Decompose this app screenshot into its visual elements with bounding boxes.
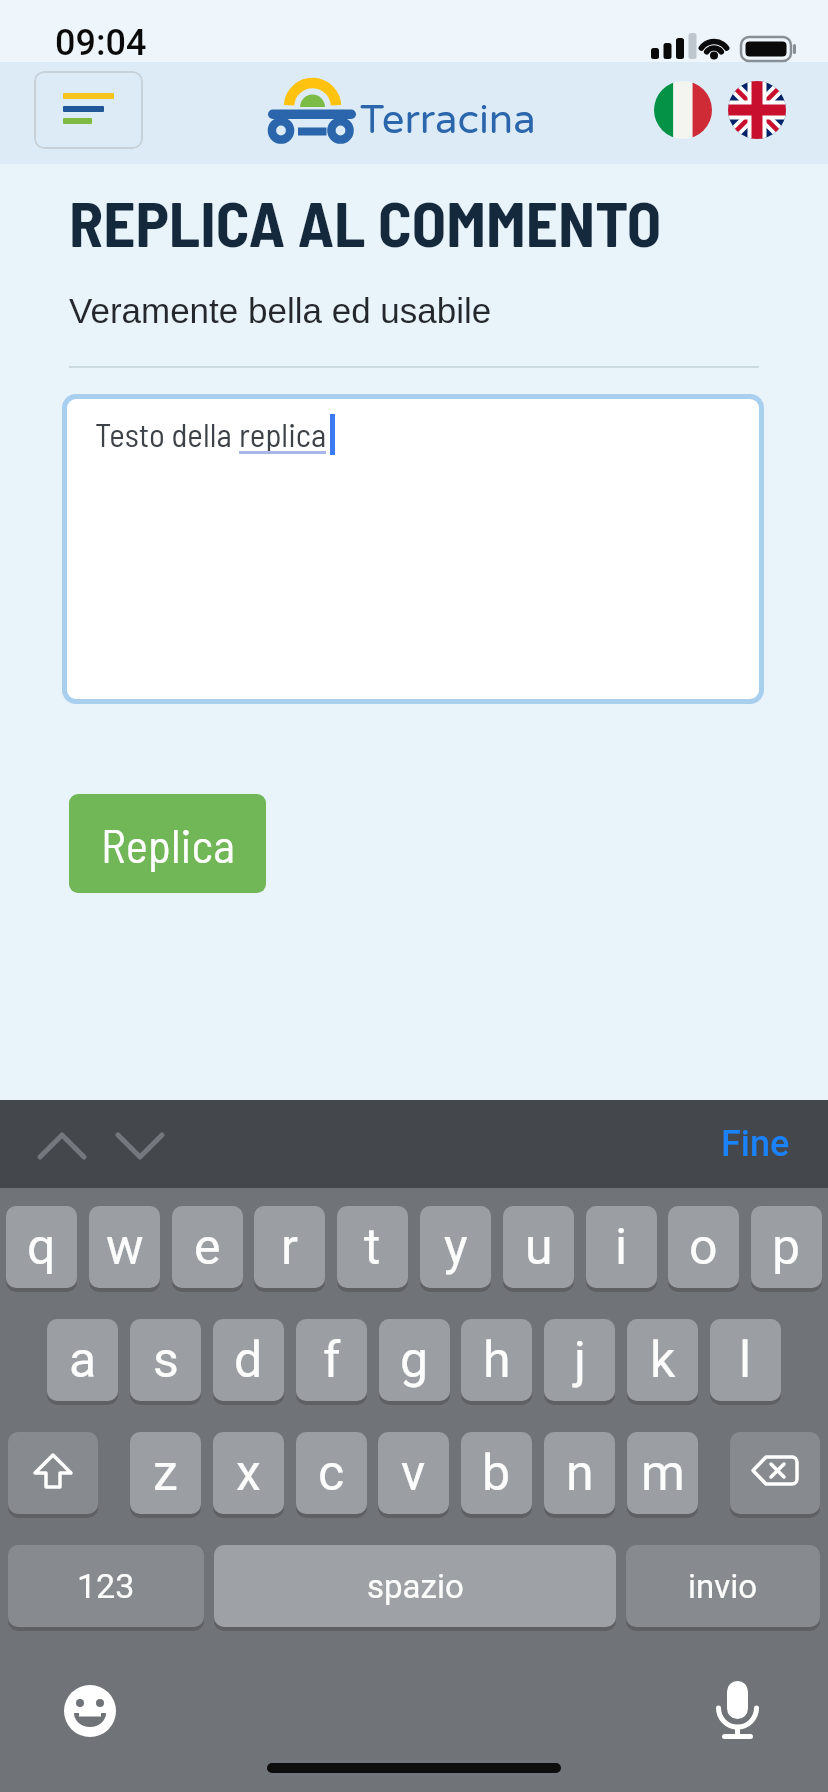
staticText: q	[27, 1218, 56, 1277]
button[interactable]: g	[379, 1319, 450, 1401]
button[interactable]: e	[172, 1206, 243, 1288]
button[interactable]: Fine	[700, 1110, 810, 1178]
staticText: o	[689, 1218, 718, 1277]
button[interactable]: h	[461, 1319, 532, 1401]
staticText: f	[323, 1331, 341, 1390]
button[interactable]: l	[710, 1319, 781, 1401]
button[interactable]	[8, 1432, 98, 1514]
button[interactable]: b	[461, 1432, 532, 1514]
staticText: j	[574, 1331, 586, 1390]
button[interactable]: f	[296, 1319, 367, 1401]
staticText: n	[566, 1444, 594, 1503]
button[interactable]	[730, 1432, 820, 1514]
staticText: replica	[239, 414, 327, 454]
button[interactable]: y	[420, 1206, 491, 1288]
button[interactable]	[728, 81, 786, 139]
staticText: v	[401, 1444, 426, 1503]
staticText: Replica	[101, 816, 235, 872]
staticText: b	[482, 1444, 511, 1503]
button[interactable]: Testo della	[62, 394, 764, 704]
staticText: t	[364, 1218, 381, 1277]
button[interactable]: i	[586, 1206, 657, 1288]
staticText: m	[641, 1444, 685, 1503]
staticText: k	[650, 1331, 676, 1390]
button[interactable]: o	[668, 1206, 739, 1288]
button[interactable]: n	[544, 1432, 615, 1514]
button[interactable]: z	[130, 1432, 201, 1514]
button[interactable]	[34, 71, 143, 149]
staticText: Testo della	[95, 414, 239, 454]
staticText: p	[772, 1218, 801, 1277]
staticText: y	[444, 1218, 468, 1277]
button[interactable]: d	[213, 1319, 284, 1401]
staticText: i	[615, 1218, 628, 1277]
button[interactable]: c	[296, 1432, 367, 1514]
button[interactable]: x	[213, 1432, 284, 1514]
button[interactable]: v	[378, 1432, 449, 1514]
staticText: u	[525, 1218, 553, 1277]
button[interactable]: 123	[8, 1545, 204, 1627]
button[interactable]	[654, 81, 712, 139]
staticText: 123	[77, 1566, 135, 1606]
staticText: h	[483, 1331, 511, 1390]
button[interactable]: spazio	[214, 1545, 616, 1627]
staticText: x	[236, 1444, 261, 1503]
button[interactable]: t	[337, 1206, 408, 1288]
staticText: Fine	[721, 1123, 790, 1165]
staticText: z	[153, 1444, 178, 1503]
staticText: g	[400, 1331, 429, 1390]
staticText: 09:04	[55, 22, 147, 64]
staticText: s	[153, 1331, 179, 1390]
button[interactable]: q	[6, 1206, 77, 1288]
staticText: Terracina	[360, 96, 536, 144]
button[interactable]: m	[627, 1432, 698, 1514]
staticText: a	[69, 1331, 97, 1390]
button[interactable]: r	[254, 1206, 325, 1288]
button[interactable]: invio	[626, 1545, 820, 1627]
button[interactable]: s	[130, 1319, 201, 1401]
button[interactable]: w	[89, 1206, 160, 1288]
staticText: invio	[688, 1567, 758, 1606]
button[interactable]: Replica	[69, 794, 266, 893]
button[interactable]: j	[544, 1319, 615, 1401]
staticText: REPLICA AL COMMENTO	[69, 184, 662, 260]
staticText: w	[106, 1218, 144, 1277]
staticText: r	[281, 1218, 298, 1277]
button[interactable]: a	[47, 1319, 118, 1401]
staticText: Veramente bella ed usabile	[69, 291, 492, 330]
staticText: e	[194, 1218, 221, 1277]
button[interactable]: k	[627, 1319, 698, 1401]
button[interactable]: u	[503, 1206, 574, 1288]
staticText: d	[234, 1331, 263, 1390]
staticText: spazio	[367, 1567, 464, 1606]
staticText: l	[739, 1331, 752, 1390]
staticText: c	[318, 1444, 345, 1503]
button[interactable]: p	[751, 1206, 822, 1288]
